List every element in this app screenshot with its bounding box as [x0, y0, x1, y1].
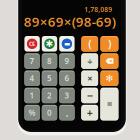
staticText: 3 [64, 90, 69, 101]
button[interactable]: ( [81, 36, 98, 52]
button[interactable]: 8 [42, 53, 57, 69]
button[interactable]: 0 [42, 105, 57, 120]
button[interactable]: 2 [42, 88, 57, 103]
button[interactable]: History [59, 36, 75, 52]
staticText: ✻ [105, 73, 113, 83]
button[interactable]: . [59, 105, 75, 120]
staticText: ✱ [45, 38, 53, 49]
staticText: × [87, 72, 92, 84]
staticText: 0 [47, 107, 52, 118]
button[interactable]: ) [100, 36, 118, 52]
staticText: = [107, 98, 112, 110]
button[interactable]: × [81, 70, 98, 86]
staticText: 2 [47, 90, 52, 101]
staticText: 89×69×(98-69) [24, 13, 116, 30]
staticText: . [65, 105, 68, 120]
staticText: + [87, 105, 93, 120]
button[interactable]: + [81, 105, 98, 120]
button[interactable]: Delete [100, 53, 118, 69]
staticText: 1 [30, 90, 35, 101]
button[interactable]: Clear entry [24, 36, 40, 52]
staticText: ▬ [64, 40, 70, 48]
staticText: ( [88, 36, 91, 51]
button[interactable]: ÷ [81, 53, 98, 69]
button[interactable]: = [100, 88, 118, 120]
staticText: 9 [64, 56, 69, 66]
button[interactable]: % [24, 105, 40, 120]
button[interactable]: 7 [24, 53, 40, 69]
staticText: 8 [47, 56, 52, 66]
staticText: ÷ [87, 55, 92, 67]
button[interactable]: 6 [59, 70, 75, 86]
button[interactable]: 3 [59, 88, 75, 103]
staticText: % [29, 107, 36, 118]
button[interactable]: 4 [24, 70, 40, 86]
staticText: × [109, 57, 112, 65]
button[interactable]: − [81, 88, 98, 103]
staticText: 7 [30, 56, 35, 66]
staticText: CE [29, 40, 35, 47]
staticText: 1,78,089 [84, 5, 112, 14]
staticText: 5 [47, 73, 52, 83]
button[interactable]: Favourite [42, 36, 57, 52]
staticText: − [87, 88, 93, 102]
staticText: ) [108, 36, 111, 51]
staticText: 4 [30, 73, 35, 83]
button[interactable]: 5 [42, 70, 57, 86]
button[interactable]: 9 [59, 53, 75, 69]
staticText: 6 [64, 73, 69, 83]
button[interactable]: 1 [24, 88, 40, 103]
button[interactable]: ✻ [100, 70, 118, 86]
